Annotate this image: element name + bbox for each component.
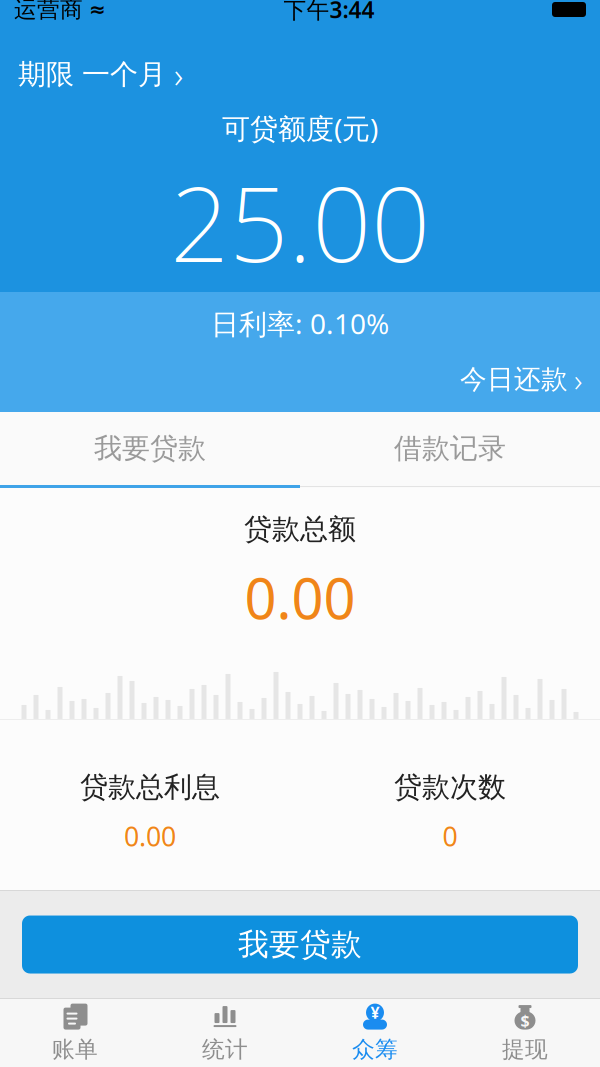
staticText: 可贷额度(元) [222,109,378,147]
staticText: 期限 一个月 [18,57,166,92]
staticText: 0 [442,818,457,854]
staticText: 今日还款 [460,363,568,396]
staticText: 我要贷款 [238,926,362,963]
staticText: $ [520,1010,529,1031]
staticText: 日利率: 0.10% [211,305,389,342]
staticText: 账单 [52,1036,98,1063]
button[interactable]: ¥ [300,999,450,1067]
staticText: 众筹 [352,1036,398,1063]
staticText: 我要贷款 [94,431,206,466]
staticText: 提现 [502,1036,548,1063]
button[interactable]: 账单 [0,999,150,1067]
staticText: ≈ [89,0,106,21]
button[interactable]: 统计 [150,999,300,1067]
staticText: 下午3:44 [283,0,374,24]
button[interactable]: $ [450,999,600,1067]
staticText: › [174,51,183,97]
staticText: 25.00 [170,153,430,291]
button[interactable]: 我要贷款 [0,412,300,485]
staticText: 贷款次数 [394,770,506,804]
staticText: 贷款总利息 [80,770,220,804]
staticText: ¥ [370,1002,379,1023]
button[interactable]: 借款记录 [300,412,600,485]
staticText: 借款记录 [394,431,506,466]
button[interactable]: 今日还款 [442,350,600,408]
staticText: 贷款总额 [244,512,356,546]
staticText: 运营商 [14,0,83,23]
button[interactable]: 期限 一个月 [0,45,201,103]
button[interactable]: 我要贷款 [22,915,578,973]
staticText: › [574,358,582,400]
staticText: 统计 [202,1036,248,1063]
staticText: 0.00 [244,560,355,635]
staticText: 0.00 [124,818,176,854]
